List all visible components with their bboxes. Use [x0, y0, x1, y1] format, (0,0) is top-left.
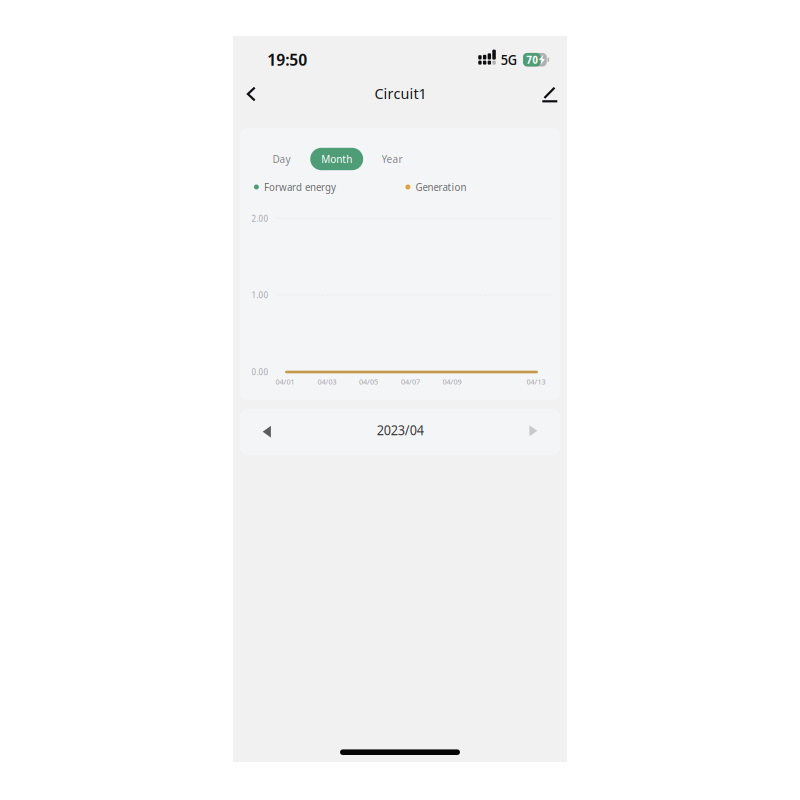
staticText: 2.00 [251, 213, 268, 224]
button[interactable]: Back [231, 74, 271, 114]
staticText: 04/01 [275, 376, 294, 387]
staticText: Year [381, 152, 402, 166]
button[interactable]: Year [372, 148, 411, 170]
button[interactable]: Month [310, 148, 363, 170]
staticText: 04/05 [359, 376, 378, 387]
staticText: 0.00 [251, 366, 268, 378]
button[interactable]: Next month [512, 409, 554, 453]
staticText: 04/03 [317, 376, 336, 387]
staticText: 04/07 [401, 376, 420, 387]
staticText: Forward energy [264, 180, 336, 194]
staticText: 5G [501, 50, 517, 69]
staticText: Day [272, 152, 290, 166]
staticText: 70 [526, 52, 538, 67]
staticText: 19:50 [267, 48, 307, 70]
staticText: Circuit1 [375, 83, 427, 103]
staticText: 04/13 [526, 376, 545, 387]
staticText: Month [321, 152, 352, 166]
staticText: 04/09 [442, 376, 461, 387]
button[interactable]: Edit [530, 75, 570, 115]
staticText: Generation [416, 180, 467, 194]
staticText: 1.00 [251, 289, 268, 301]
button[interactable]: Previous month [246, 410, 288, 454]
button[interactable]: Day [263, 148, 299, 170]
staticText: 2023/04 [377, 421, 424, 439]
